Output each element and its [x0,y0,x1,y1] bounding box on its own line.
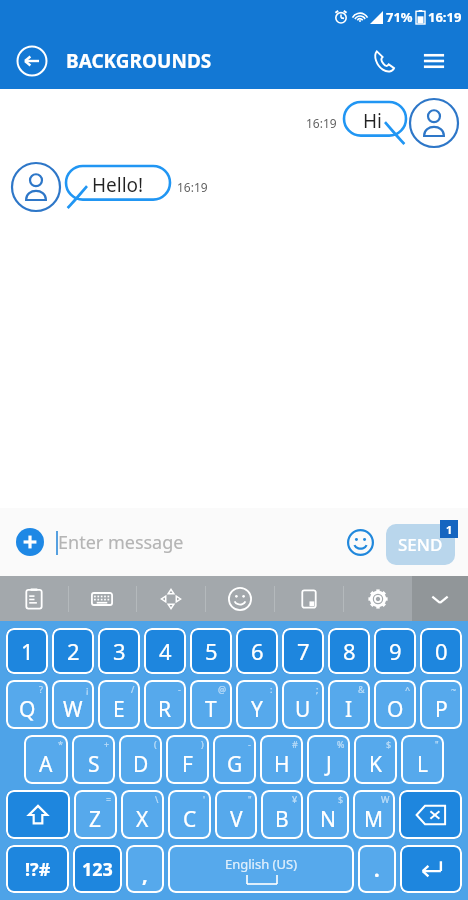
button[interactable]: M [353,790,395,839]
staticText: W [63,695,83,724]
button[interactable]: E [98,680,140,729]
button[interactable]: Emoji [340,522,380,562]
staticText: Y [251,695,263,724]
staticText: ~ [451,683,457,695]
staticText: F [182,750,193,779]
staticText: L [417,750,429,779]
staticText: $ [386,738,392,750]
button[interactable]: SEND [386,524,455,565]
button[interactable]: Z [74,790,117,839]
button[interactable]: Call [364,41,404,81]
button[interactable]: T [190,680,232,729]
button[interactable]: Menu [414,41,454,81]
button[interactable]: H [260,735,303,784]
staticText: - [178,683,181,695]
button[interactable]: L [401,735,444,784]
button[interactable]: W [52,680,94,729]
button[interactable]: K [354,735,397,784]
staticText: 1 [446,522,453,537]
button[interactable]: Sticker [274,576,343,621]
button[interactable]: J [307,735,350,784]
staticText: 6 [251,636,264,666]
button[interactable]: S [72,735,115,784]
button[interactable]: 5 [190,628,232,674]
button[interactable]: I [328,680,370,729]
button[interactable]: 2 [52,628,94,674]
staticText: ? [39,683,43,695]
button[interactable]: 4 [144,628,186,674]
button[interactable]: 8 [328,628,370,674]
staticText: \ [155,793,159,805]
staticText: = [106,793,112,805]
button[interactable]: 7 [282,628,324,674]
button[interactable]: 6 [236,628,278,674]
button[interactable]: Settings [343,576,412,621]
staticText: 3 [113,636,126,666]
staticText: # [292,738,298,750]
staticText: ' [203,793,206,805]
staticText: W [381,793,390,805]
staticText: , [142,861,148,888]
staticText: ; [316,683,319,695]
button[interactable]: Shift [6,790,70,839]
button[interactable]: A [24,735,68,784]
button[interactable]: 0 [420,628,462,674]
button[interactable]: Comma [126,845,164,893]
button[interactable]: Period [358,845,396,893]
staticText: ¡ [86,683,89,695]
staticText: D [133,750,149,779]
button[interactable]: Keyboard layout [68,576,136,621]
button[interactable]: Clipboard [0,576,68,621]
button[interactable]: V [215,790,257,839]
button[interactable]: O [374,680,416,729]
staticText: 4 [159,636,172,666]
staticText: " [248,793,252,805]
button[interactable]: C [168,790,211,839]
staticText: " [435,738,439,750]
button[interactable]: Numbers [73,845,122,893]
button[interactable]: Q [6,680,48,729]
button[interactable]: 3 [98,628,140,674]
button[interactable]: Backspace [399,790,462,839]
staticText: Hi [363,108,382,134]
button[interactable]: Space [168,845,354,893]
button[interactable]: X [121,790,164,839]
staticText: ¥ [292,793,298,805]
button[interactable]: R [144,680,186,729]
button[interactable]: B [261,790,303,839]
staticText: 7 [297,636,310,666]
button[interactable]: Back [14,43,50,79]
button[interactable]: Symbols [6,845,69,893]
button[interactable]: Add attachment [10,522,50,562]
staticText: 123 [82,857,113,882]
staticText: E [113,695,125,724]
button[interactable]: Hide keyboard [412,576,468,621]
button[interactable]: Enter [400,845,462,893]
button[interactable]: Emoji [205,576,274,621]
button[interactable]: 1 [6,628,48,674]
button[interactable]: F [166,735,209,784]
button[interactable]: G [213,735,256,784]
staticText: English (US) [225,855,298,873]
staticText: H [274,750,290,779]
staticText: !?# [25,857,51,882]
staticText: 8 [343,636,356,666]
button[interactable]: U [282,680,324,729]
staticText: V [230,805,243,834]
staticText: R [158,695,172,724]
staticText: % [337,738,345,750]
staticText: 16:19 [177,179,208,195]
button[interactable]: Move cursor [136,576,205,621]
staticText: P [435,695,448,724]
staticText: I [345,695,353,724]
staticText: A [39,750,53,779]
button[interactable]: N [307,790,349,839]
staticText: O [387,695,404,724]
button[interactable]: D [119,735,162,784]
button[interactable]: 9 [374,628,416,674]
staticText: ) [201,738,204,750]
staticText: Z [89,805,102,834]
button[interactable]: P [420,680,462,729]
button[interactable]: Y [236,680,278,729]
staticText: @ [218,683,227,695]
